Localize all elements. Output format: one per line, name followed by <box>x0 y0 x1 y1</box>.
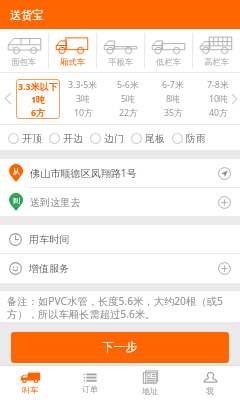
other: Add service <box>218 262 231 275</box>
button[interactable]: 到 <box>0 188 240 216</box>
button[interactable]: 边门 <box>90 129 124 147</box>
button[interactable]: 5-6米 <box>105 73 150 124</box>
staticText: 尾板 <box>145 132 165 144</box>
button[interactable]: 开顶 <box>8 129 42 147</box>
staticText: 佛山市顺德区凤翔路1号 <box>30 166 218 180</box>
staticText: 送到这里去 <box>30 196 218 209</box>
button[interactable]: 地址 <box>120 366 180 400</box>
staticText: 6-7米 <box>162 79 184 91</box>
staticText: 40方 <box>209 107 228 119</box>
staticText: 备注：如PVC水管，长度5.6米，大约20根（或5方），所以车厢长需超过5.6米… <box>7 294 231 321</box>
staticText: 7-8米 <box>207 79 229 91</box>
other: Next <box>228 73 240 124</box>
staticText: 5-6米 <box>117 79 139 91</box>
staticText: 开边 <box>63 132 83 144</box>
staticText: 低栏车 <box>156 57 182 68</box>
button[interactable]: 6-7米 <box>150 73 195 124</box>
staticText: 平板车 <box>108 57 134 68</box>
staticText: 厢式车 <box>60 57 86 68</box>
button[interactable]: 开边 <box>49 129 83 147</box>
button[interactable]: 下一步 <box>11 332 229 363</box>
other: Previous <box>0 73 16 124</box>
button[interactable]: 增值服务 <box>0 254 240 283</box>
button[interactable]: 7-8米 <box>195 73 240 124</box>
staticText: 1吨 <box>31 93 45 105</box>
button[interactable]: 防雨 <box>172 129 206 147</box>
button[interactable]: 用车时间 <box>0 225 240 253</box>
staticText: 35方 <box>164 107 183 119</box>
staticText: 边门 <box>104 132 124 144</box>
staticText: 3.3-5米 <box>68 79 98 91</box>
staticText: 10方 <box>74 107 93 119</box>
staticText: 面包车 <box>11 57 37 68</box>
button[interactable]: 厢式车 <box>49 29 96 72</box>
staticText: 用车时间 <box>29 233 231 246</box>
staticText: 开顶 <box>22 132 42 144</box>
button[interactable]: 低栏车 <box>145 29 192 72</box>
staticText: 8吨 <box>166 93 180 105</box>
button[interactable]: 叫车 <box>0 366 60 400</box>
button[interactable]: 面包车 <box>0 29 48 72</box>
button[interactable]: 高栏车 <box>193 29 240 72</box>
staticText: 10吨 <box>209 93 228 105</box>
staticText: 6方 <box>31 106 45 118</box>
staticText: 订单 <box>82 384 98 394</box>
staticText: 22方 <box>119 107 138 119</box>
staticText: 3.3米以下 <box>18 80 58 92</box>
staticText: 高栏车 <box>204 57 230 68</box>
staticText: 叫车 <box>22 385 38 395</box>
staticText: 到 <box>13 196 20 205</box>
staticText: 下一步 <box>102 340 138 355</box>
other: Locate me <box>218 167 231 180</box>
staticText: 3吨 <box>76 93 90 105</box>
button[interactable]: 从 <box>0 159 240 187</box>
button[interactable]: 尾板 <box>131 129 165 147</box>
staticText: 送货宝 <box>10 8 44 22</box>
button[interactable]: 3.3米以下 <box>16 79 60 119</box>
staticText: 防雨 <box>186 132 206 144</box>
staticText: 地址 <box>142 386 158 396</box>
staticText: 增值服务 <box>29 262 218 275</box>
button[interactable]: 我 <box>180 366 240 400</box>
staticText: 我 <box>206 386 214 396</box>
other: Add destination <box>218 196 231 209</box>
button[interactable]: 3.3-5米 <box>60 73 105 124</box>
button[interactable]: 平板车 <box>97 29 144 72</box>
staticText: 从 <box>13 167 20 176</box>
staticText: 5吨 <box>121 93 135 105</box>
button[interactable]: 订单 <box>60 366 120 400</box>
